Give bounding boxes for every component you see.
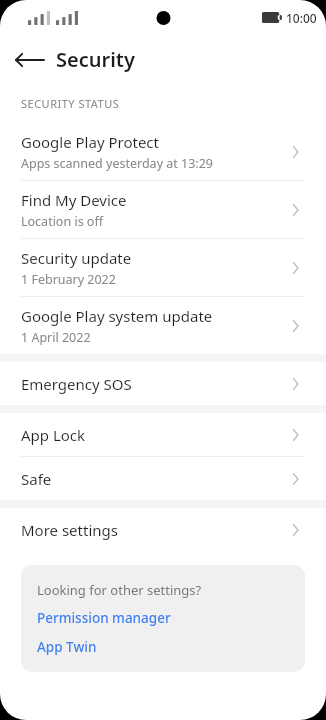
staticText: 1 February 2022 bbox=[21, 271, 116, 288]
staticText: Apps scanned yesterday at 13:29 bbox=[21, 155, 213, 172]
button[interactable]: Emergency SOS bbox=[0, 362, 326, 405]
staticText: SECURITY STATUS bbox=[21, 96, 120, 111]
staticText: Emergency SOS bbox=[21, 374, 132, 394]
button[interactable]: Security update bbox=[0, 239, 326, 297]
staticText: Safe bbox=[21, 469, 52, 489]
button[interactable]: App Lock bbox=[0, 413, 326, 457]
button[interactable]: Google Play Protect bbox=[0, 123, 326, 181]
staticText: More settings bbox=[21, 520, 118, 540]
staticText: Find My Device bbox=[21, 190, 127, 210]
button[interactable]: App Twin bbox=[37, 638, 97, 656]
button[interactable]: Permission manager bbox=[37, 609, 171, 627]
staticText: App Lock bbox=[21, 425, 86, 445]
button[interactable]: Google Play system update bbox=[0, 297, 326, 354]
button[interactable]: Safe bbox=[0, 457, 326, 500]
staticText: 1 April 2022 bbox=[21, 329, 91, 346]
staticText: Google Play Protect bbox=[21, 132, 159, 152]
button[interactable]: More settings bbox=[0, 508, 326, 551]
staticText: Looking for other settings? bbox=[37, 581, 202, 599]
button[interactable]: Back bbox=[10, 40, 50, 80]
staticText: Security update bbox=[21, 248, 132, 268]
staticText: Google Play system update bbox=[21, 306, 213, 326]
staticText: Security bbox=[56, 46, 135, 73]
staticText: Location is off bbox=[21, 213, 104, 230]
button[interactable]: Find My Device bbox=[0, 181, 326, 239]
staticText: 10:00 bbox=[286, 10, 317, 26]
